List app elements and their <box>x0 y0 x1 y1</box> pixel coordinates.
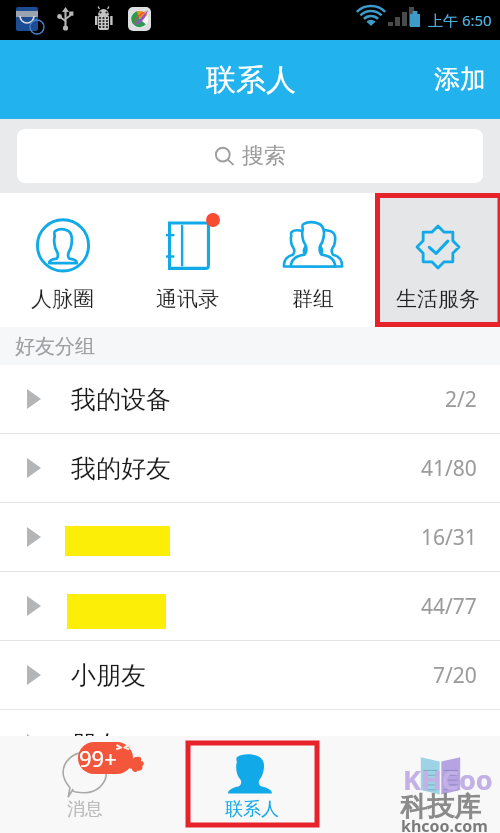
staticText: 联系人 <box>225 798 279 821</box>
staticText: 99+ <box>79 743 117 773</box>
button[interactable]: 我的好友 <box>0 434 500 503</box>
button[interactable]: 群组 <box>250 193 375 327</box>
button[interactable]: 添加 <box>416 51 500 108</box>
button[interactable]: 16/31 <box>0 503 500 572</box>
staticText: 消息 <box>67 798 103 821</box>
button[interactable]: 消息 <box>0 736 167 833</box>
button[interactable]: 搜索 <box>17 129 483 183</box>
button[interactable]: 44/77 <box>0 572 500 641</box>
button[interactable]: 生活服务 <box>375 193 500 327</box>
staticText: 上午 6:50 <box>428 10 492 30</box>
staticText: 科技库 <box>400 790 481 824</box>
staticText: 群组 <box>292 286 334 312</box>
button[interactable]: 通讯录 <box>125 193 250 327</box>
staticText: 2/2 <box>445 385 477 414</box>
button[interactable]: 小朋友 <box>0 641 500 710</box>
staticText: 小朋友 <box>71 660 146 691</box>
staticText: 44/77 <box>421 592 477 621</box>
staticText: 我的设备 <box>71 384 171 415</box>
staticText: 添加 <box>434 63 486 96</box>
staticText: 朋友 <box>71 729 121 760</box>
staticText: 人脉圈 <box>31 286 94 312</box>
staticText: 7/20 <box>433 661 477 690</box>
button[interactable]: 我的设备 <box>0 365 500 434</box>
button[interactable] <box>188 743 317 825</box>
staticText: 通讯录 <box>156 286 219 312</box>
staticText: 生活服务 <box>396 286 480 312</box>
staticText: 搜索 <box>242 142 286 170</box>
staticText: 联系人 <box>206 61 296 99</box>
staticText: 好友分组 <box>15 334 95 359</box>
staticText: 16/31 <box>421 523 477 552</box>
staticText: khcoo.com <box>401 815 488 833</box>
staticText: KHCoo <box>403 761 493 798</box>
button[interactable]: 人脉圈 <box>0 193 125 327</box>
button[interactable]: 朋友 <box>0 710 500 779</box>
staticText: 我的好友 <box>71 453 171 484</box>
staticText: 41/80 <box>421 454 477 483</box>
